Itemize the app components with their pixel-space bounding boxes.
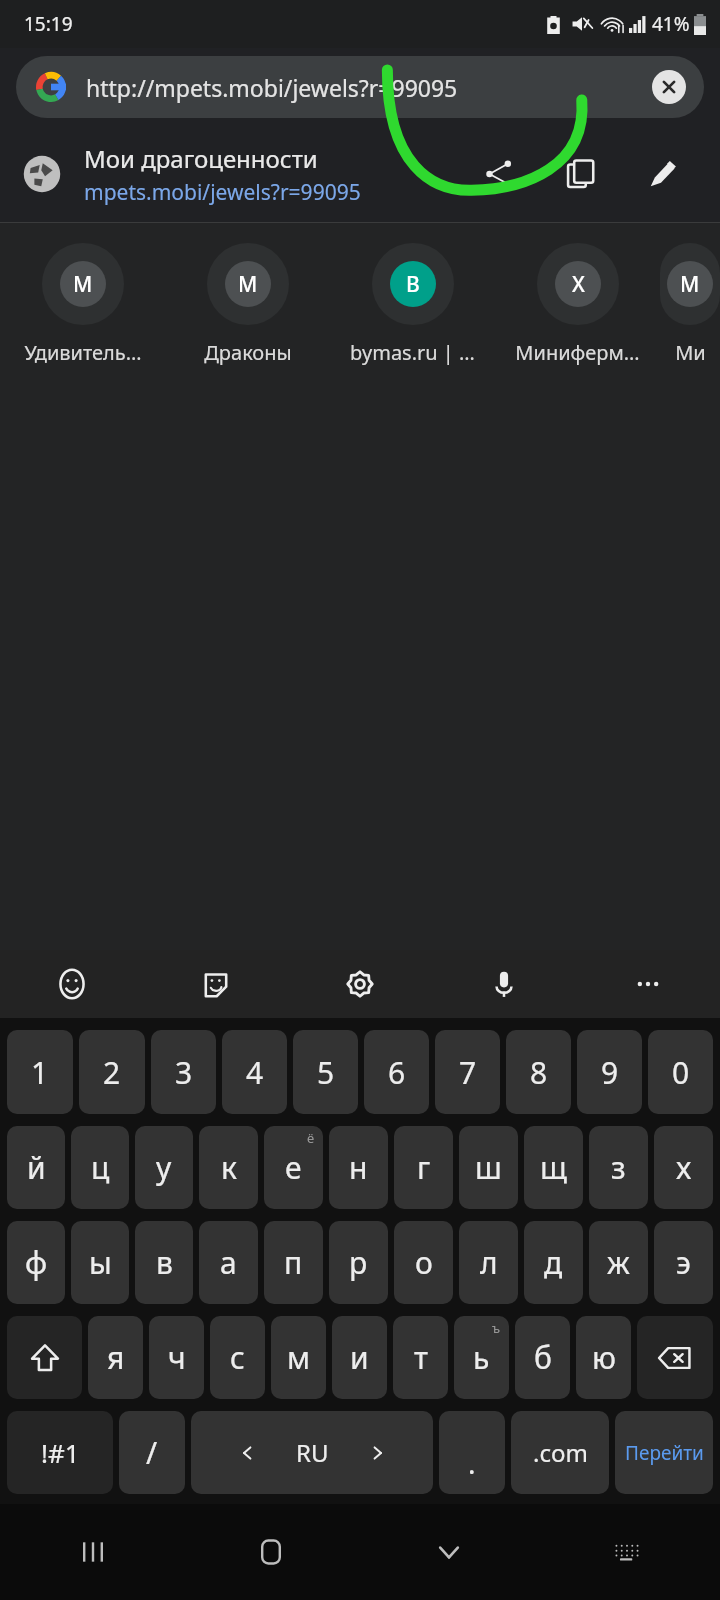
staticText: м <box>287 1337 311 1378</box>
button[interactable]: 7 <box>435 1030 500 1114</box>
button[interactable]: я <box>88 1316 143 1399</box>
button[interactable]: Shift <box>7 1316 82 1399</box>
button[interactable]: 3 <box>151 1030 216 1114</box>
button[interactable]: й <box>7 1126 65 1209</box>
button[interactable]: ь <box>454 1316 509 1399</box>
button[interactable]: Home <box>226 1507 316 1597</box>
button[interactable]: Slash <box>119 1411 185 1494</box>
button[interactable]: д <box>524 1221 583 1304</box>
staticText: ы <box>89 1242 112 1283</box>
staticText: 15:19 <box>24 11 73 37</box>
staticText: !#1 <box>41 1435 80 1470</box>
button[interactable]: Emoji <box>0 950 144 1018</box>
button[interactable]: .com <box>511 1411 609 1494</box>
button[interactable]: 4 <box>222 1030 287 1114</box>
staticText: п <box>284 1242 303 1283</box>
staticText: X <box>572 270 585 299</box>
button[interactable]: у <box>135 1126 193 1209</box>
button[interactable]: т <box>393 1316 448 1399</box>
button[interactable]: M <box>0 223 165 375</box>
staticText: B <box>406 270 420 299</box>
button[interactable]: Backspace <box>637 1316 713 1399</box>
button[interactable]: с <box>210 1316 265 1399</box>
button[interactable]: а <box>199 1221 258 1304</box>
button[interactable]: Edit <box>622 126 704 222</box>
button[interactable]: в <box>135 1221 193 1304</box>
staticText: ш <box>475 1147 502 1188</box>
button[interactable]: ч <box>149 1316 204 1399</box>
staticText: Перейти <box>625 1440 704 1466</box>
button[interactable]: к <box>199 1126 258 1209</box>
staticText: с <box>230 1337 245 1378</box>
staticText: 9 <box>601 1052 619 1093</box>
button[interactable]: ш <box>459 1126 518 1209</box>
staticText: http://mpets.mobi/jewels?r=99095 <box>86 72 652 103</box>
button[interactable]: 8 <box>506 1030 571 1114</box>
staticText: 6 <box>388 1052 406 1093</box>
button[interactable]: Language RU <box>191 1411 433 1494</box>
staticText: ъ <box>492 1319 501 1337</box>
button[interactable]: Share <box>458 126 540 222</box>
button[interactable]: г <box>394 1126 453 1209</box>
button[interactable]: щ <box>524 1126 583 1209</box>
button[interactable]: Copy <box>540 126 622 222</box>
button[interactable]: Мои драгоценности <box>0 126 720 222</box>
staticText: д <box>544 1242 563 1283</box>
button[interactable]: Switch keyboard <box>582 1507 672 1597</box>
button[interactable]: ю <box>576 1316 631 1399</box>
staticText: M <box>680 270 700 299</box>
button[interactable]: Settings <box>288 950 432 1018</box>
staticText: ч <box>168 1337 186 1378</box>
staticText: щ <box>540 1147 567 1188</box>
button[interactable]: B <box>330 223 495 375</box>
button[interactable]: More options <box>576 950 720 1018</box>
button[interactable]: ж <box>589 1221 648 1304</box>
staticText: Удивитель… <box>24 339 142 366</box>
button[interactable]: Stickers <box>144 950 288 1018</box>
button[interactable]: л <box>459 1221 518 1304</box>
button[interactable]: э <box>654 1221 713 1304</box>
button[interactable]: http://mpets.mobi/jewels?r=99095 <box>16 56 704 118</box>
staticText: з <box>611 1147 626 1188</box>
staticText: / <box>146 1432 158 1473</box>
button[interactable]: Clear <box>652 70 686 104</box>
button[interactable]: X <box>495 223 660 375</box>
staticText: н <box>349 1147 368 1188</box>
button[interactable]: Period <box>439 1411 505 1494</box>
button[interactable]: п <box>264 1221 323 1304</box>
button[interactable]: р <box>329 1221 388 1304</box>
button[interactable]: 5 <box>293 1030 358 1114</box>
button[interactable]: ц <box>71 1126 129 1209</box>
button[interactable]: Symbols <box>7 1411 113 1494</box>
staticText: ц <box>91 1147 110 1188</box>
button[interactable]: х <box>654 1126 713 1209</box>
staticText: Драконы <box>204 339 292 366</box>
button[interactable]: и <box>332 1316 387 1399</box>
button[interactable]: Hide keyboard <box>404 1507 494 1597</box>
button[interactable]: Go <box>615 1411 713 1494</box>
staticText: х <box>676 1147 692 1188</box>
button[interactable]: M <box>660 223 720 375</box>
button[interactable]: м <box>271 1316 326 1399</box>
button[interactable]: 0 <box>648 1030 713 1114</box>
button[interactable]: ф <box>7 1221 65 1304</box>
button[interactable]: 6 <box>364 1030 429 1114</box>
button[interactable]: 2 <box>79 1030 145 1114</box>
button[interactable]: 9 <box>577 1030 642 1114</box>
staticText: а <box>220 1242 237 1283</box>
button[interactable]: M <box>165 223 330 375</box>
button[interactable]: Recents <box>48 1507 138 1597</box>
button[interactable]: е <box>264 1126 323 1209</box>
staticText: ю <box>592 1337 616 1378</box>
staticText: 0 <box>672 1052 690 1093</box>
button[interactable]: н <box>329 1126 388 1209</box>
button[interactable]: б <box>515 1316 570 1399</box>
button[interactable]: ы <box>71 1221 129 1304</box>
staticText: bymas.ru | … <box>350 339 475 366</box>
button[interactable]: Voice input <box>432 950 576 1018</box>
button[interactable]: з <box>589 1126 648 1209</box>
button[interactable]: о <box>394 1221 453 1304</box>
button[interactable]: 1 <box>7 1030 73 1114</box>
staticText: р <box>349 1242 368 1283</box>
staticText: г <box>417 1147 431 1188</box>
